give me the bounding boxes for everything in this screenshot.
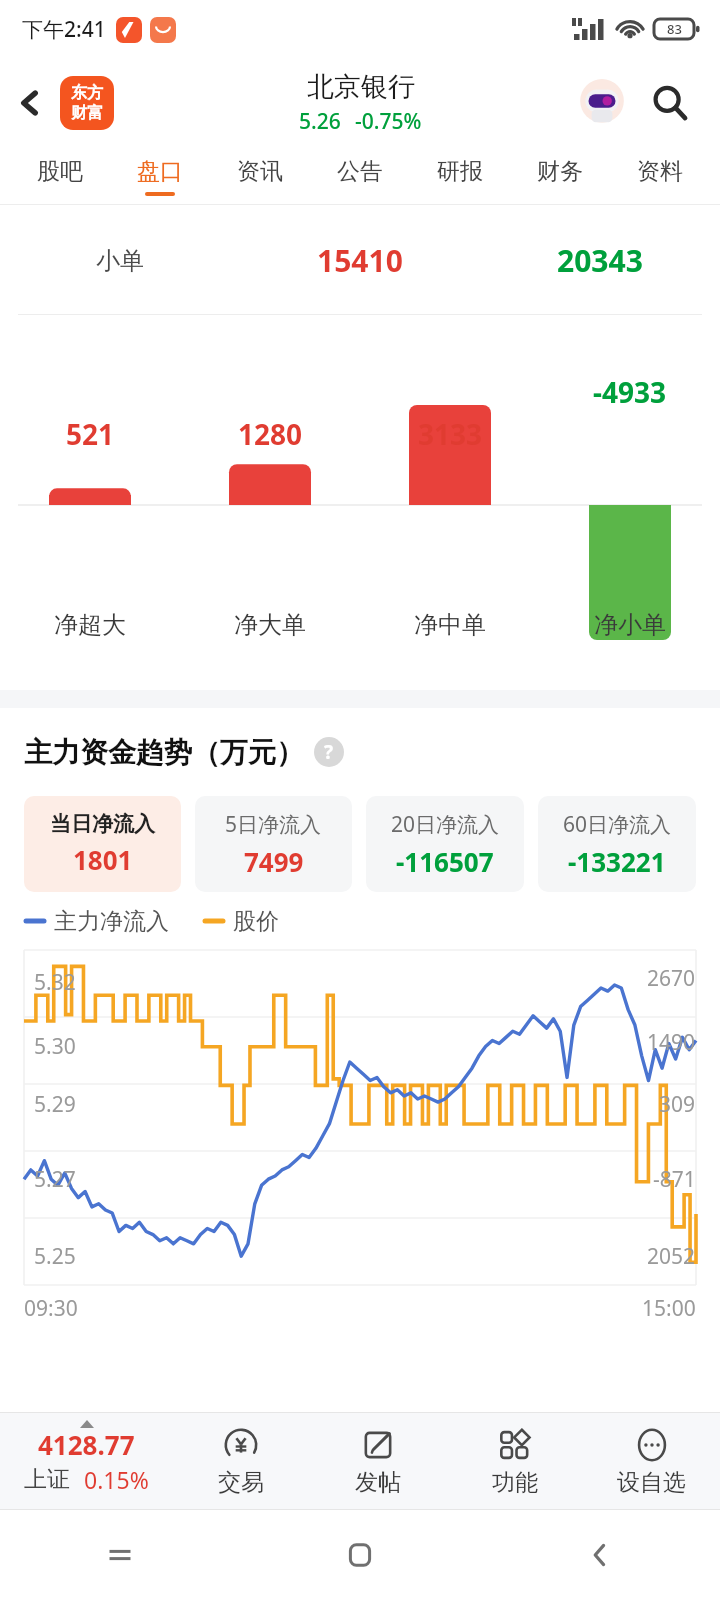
staticText: 股价 xyxy=(233,907,279,936)
staticText: 设自选 xyxy=(617,1468,686,1497)
staticText: 净小单 xyxy=(594,610,666,640)
button[interactable]: 财务 xyxy=(510,148,610,204)
staticText: 资料 xyxy=(637,157,683,186)
staticText: 当日净流入 xyxy=(50,811,155,837)
staticText: 主力净流入 xyxy=(54,907,169,936)
staticText: 上证 xyxy=(24,1465,70,1494)
staticText: -871 xyxy=(653,1165,696,1194)
staticText: 5.25 xyxy=(34,1242,76,1271)
staticText: 发帖 xyxy=(355,1468,401,1497)
button[interactable]: 资讯 xyxy=(210,148,310,204)
button[interactable]: AI assistant xyxy=(576,77,628,129)
button[interactable]: East Money xyxy=(60,76,114,130)
staticText: 5.26 xyxy=(299,107,341,136)
staticText: -116507 xyxy=(396,844,494,879)
staticText: 1801 xyxy=(73,842,133,877)
staticText: 20343 xyxy=(557,240,643,281)
button[interactable]: Back xyxy=(480,1510,720,1600)
staticText: 0.15% xyxy=(84,1464,149,1495)
staticText: 交易 xyxy=(218,1468,264,1497)
button[interactable]: 盘口 xyxy=(110,148,210,204)
button[interactable]: 公告 xyxy=(310,148,410,204)
button[interactable]: 60日净流入 xyxy=(538,796,696,892)
staticText: 5.30 xyxy=(34,1032,76,1061)
button[interactable]: 4128.77 xyxy=(0,1413,172,1509)
staticText: 财富 xyxy=(71,103,103,123)
staticText: ? xyxy=(324,739,334,765)
staticText: 小单 xyxy=(96,246,144,276)
staticText: 2052 xyxy=(647,1242,696,1271)
staticText: -133221 xyxy=(568,844,666,879)
staticText: 5.27 xyxy=(34,1165,76,1194)
staticText: 资讯 xyxy=(237,157,283,186)
staticText: 5.32 xyxy=(34,968,76,997)
button[interactable]: Search xyxy=(640,73,700,133)
button[interactable]: Back xyxy=(0,73,60,133)
button[interactable]: 当日净流入 xyxy=(24,796,181,892)
button[interactable]: 发帖 xyxy=(309,1413,446,1509)
staticText: 研报 xyxy=(437,157,483,186)
button[interactable]: 研报 xyxy=(410,148,510,204)
staticText: 净超大 xyxy=(54,610,126,640)
staticText: 4128.77 xyxy=(38,1427,135,1462)
staticText: 60日净流入 xyxy=(563,810,672,839)
staticText: 09:30 xyxy=(24,1294,78,1323)
staticText: 主力资金趋势（万元） xyxy=(24,735,304,770)
staticText: 公告 xyxy=(337,157,383,186)
staticText: 7499 xyxy=(244,844,304,879)
staticText: 20日净流入 xyxy=(391,810,500,839)
staticText: -4933 xyxy=(593,373,667,411)
staticText: 5日净流入 xyxy=(225,810,322,839)
button[interactable]: 股吧 xyxy=(10,148,110,204)
staticText: -0.75% xyxy=(355,107,422,136)
button[interactable]: 20日净流入 xyxy=(366,796,524,892)
staticText: 2670 xyxy=(647,964,696,993)
staticText: 净大单 xyxy=(234,610,306,640)
staticText: 功能 xyxy=(492,1468,538,1497)
button[interactable]: Home xyxy=(240,1510,480,1600)
staticText: 下午2:41 xyxy=(22,15,106,44)
staticText: 3133 xyxy=(418,415,483,453)
staticText: 521 xyxy=(66,415,115,453)
staticText: 15:00 xyxy=(642,1294,696,1323)
staticText: 股吧 xyxy=(37,157,83,186)
staticText: 83 xyxy=(667,20,682,38)
staticText: 北京银行 xyxy=(307,70,415,104)
staticText: 1280 xyxy=(238,415,303,453)
button[interactable]: Help xyxy=(314,737,344,767)
button[interactable]: 资料 xyxy=(610,148,710,204)
staticText: 东方 xyxy=(71,83,103,103)
staticText: 净中单 xyxy=(414,610,486,640)
staticText: 盘口 xyxy=(137,157,183,186)
button[interactable]: Recents xyxy=(0,1510,240,1600)
button[interactable]: 功能 xyxy=(446,1413,583,1509)
staticText: 309 xyxy=(659,1090,696,1119)
button[interactable]: 交易 xyxy=(172,1413,309,1509)
staticText: 财务 xyxy=(537,157,583,186)
staticText: 5.29 xyxy=(34,1090,76,1119)
staticText: 1490 xyxy=(647,1028,696,1057)
staticText: 15410 xyxy=(317,240,403,281)
button[interactable]: 设自选 xyxy=(583,1413,720,1509)
button[interactable]: 5日净流入 xyxy=(195,796,352,892)
